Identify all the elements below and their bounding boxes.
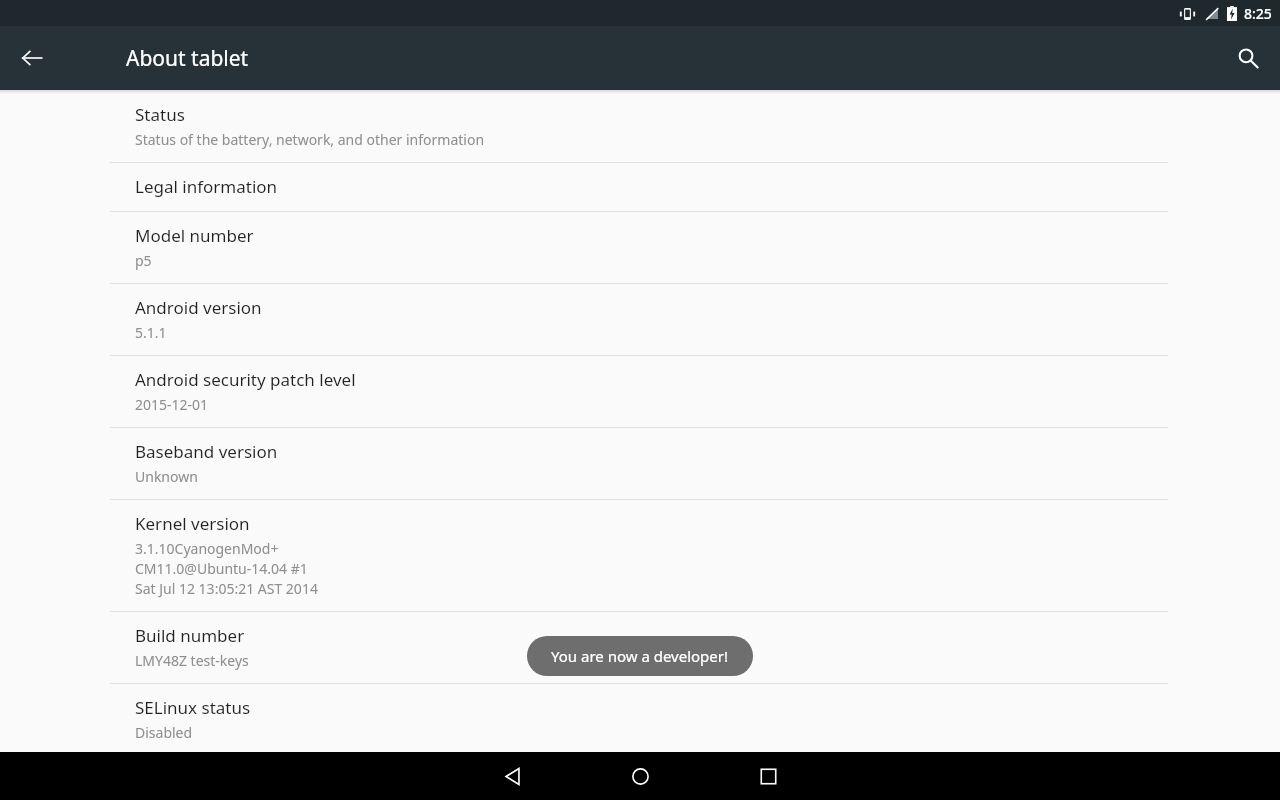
button[interactable]: Build number (0, 624, 1280, 683)
staticText: Baseband version (135, 440, 278, 463)
staticText: SELinux status (135, 696, 251, 719)
button[interactable]: Back (448, 752, 576, 800)
staticText: p5 (135, 251, 152, 270)
button[interactable]: Legal information (0, 175, 1280, 211)
button[interactable]: Search (1224, 34, 1272, 82)
staticText: Model number (135, 224, 254, 247)
button[interactable]: Status (0, 103, 1280, 162)
button[interactable]: Android security patch level (0, 368, 1280, 427)
staticText: 3.1.10CyanogenMod+ (135, 539, 279, 558)
button[interactable]: Kernel version (0, 512, 1280, 611)
button[interactable]: Baseband version (0, 440, 1280, 499)
staticText: Sat Jul 12 13:05:21 AST 2014 (135, 579, 318, 598)
button[interactable]: SELinux status (0, 696, 1280, 752)
staticText: LMY48Z test-keys (135, 651, 249, 670)
staticText: 8:25 (1244, 4, 1272, 23)
staticText: Unknown (135, 467, 198, 486)
staticText: Status of the battery, network, and othe… (135, 130, 485, 149)
button[interactable]: Back (8, 34, 56, 82)
staticText: Kernel version (135, 512, 250, 535)
staticText: Status (135, 103, 185, 126)
staticText: CM11.0@Ubuntu-14.04 #1 (135, 559, 308, 578)
staticText: Android version (135, 296, 262, 319)
staticText: 2015-12-01 (135, 395, 209, 414)
staticText: Android security patch level (135, 368, 356, 391)
staticText: You are now a developer! (551, 646, 729, 666)
button[interactable]: Android version (0, 296, 1280, 355)
button[interactable]: Recent apps (704, 752, 832, 800)
button[interactable]: Home (576, 752, 704, 800)
staticText: Build number (135, 624, 245, 647)
staticText: Legal information (135, 175, 278, 198)
staticText: About tablet (126, 44, 249, 73)
button[interactable]: Model number (0, 224, 1280, 283)
staticText: 5.1.1 (135, 323, 167, 342)
staticText: Disabled (135, 723, 193, 742)
